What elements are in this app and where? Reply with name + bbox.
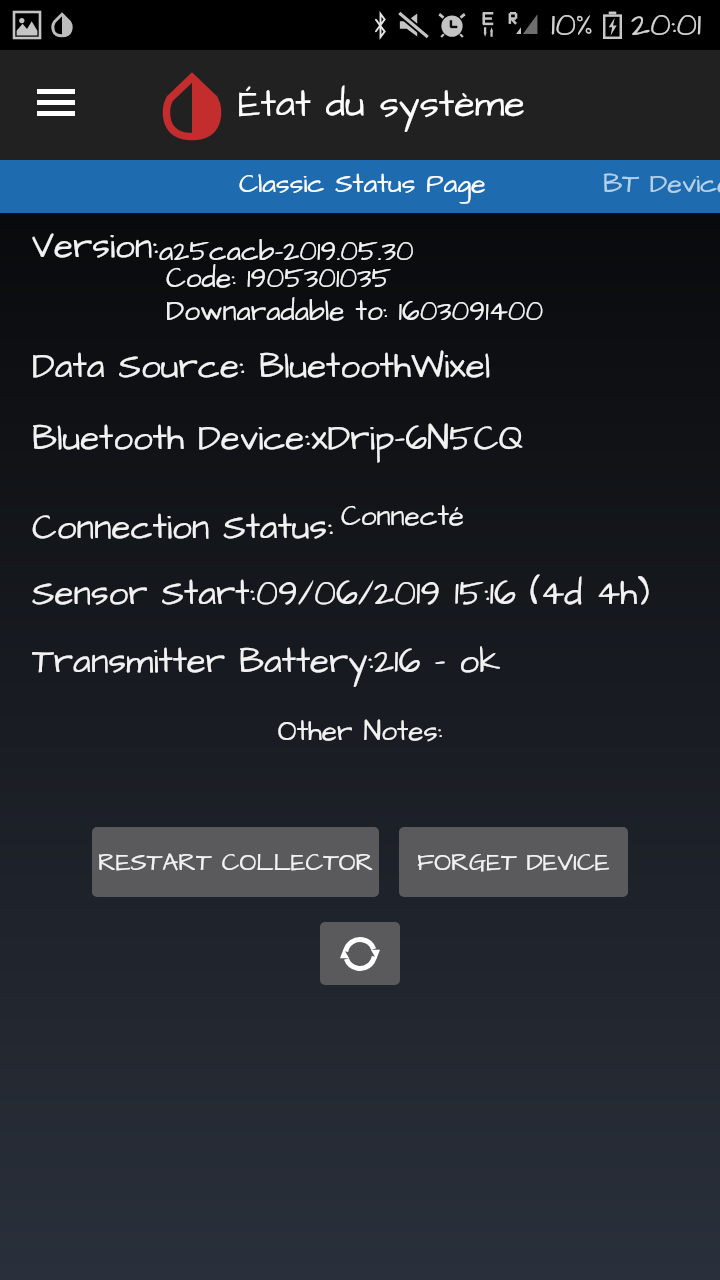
staticText: Sensor Start: bbox=[32, 569, 256, 618]
staticText: a25cacb-2019.05.30 bbox=[159, 232, 414, 271]
button[interactable]: Refresh bbox=[320, 922, 400, 985]
staticText: Other Notes: bbox=[0, 712, 720, 751]
staticText: Downaradable to: 1603091400 bbox=[166, 292, 544, 331]
staticText: FORGET DEVICE bbox=[417, 845, 610, 880]
staticText: Bluetooth Device: bbox=[32, 414, 311, 463]
button[interactable]: Open navigation menu bbox=[28, 77, 84, 133]
staticText: Code: 1905301035 bbox=[166, 259, 392, 298]
button[interactable]: RESTART COLLECTOR bbox=[92, 827, 379, 897]
staticText: BluetoothWixel bbox=[259, 342, 491, 391]
button[interactable]: Classic Status Page bbox=[222, 160, 502, 213]
staticText: 10% bbox=[551, 2, 594, 48]
staticText: BT Device bbox=[603, 165, 720, 203]
staticText: Classic Status Page bbox=[239, 165, 486, 203]
button[interactable]: FORGET DEVICE bbox=[399, 827, 628, 897]
button[interactable]: BT Device bbox=[568, 160, 720, 213]
staticText: État du système bbox=[238, 79, 525, 132]
staticText: Connection Status: bbox=[32, 503, 333, 552]
staticText: xDrip-6N5CQ bbox=[311, 414, 524, 463]
staticText: Data Source: bbox=[32, 342, 259, 391]
staticText: 09/06/2019 15:16 (4d 4h) bbox=[256, 569, 650, 618]
staticText: RESTART COLLECTOR bbox=[98, 845, 374, 880]
staticText: Version: bbox=[32, 222, 159, 271]
staticText: Connecté bbox=[341, 497, 464, 536]
staticText: 20:01 bbox=[631, 2, 702, 48]
staticText: Transmitter Battery: bbox=[32, 637, 374, 686]
staticText: 216 - ok bbox=[374, 637, 501, 686]
